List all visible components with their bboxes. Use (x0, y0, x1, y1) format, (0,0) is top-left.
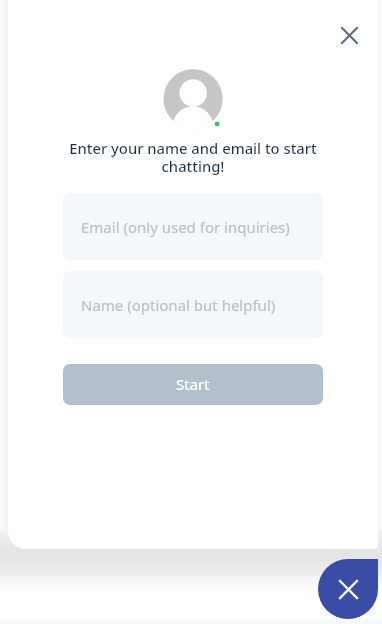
staticText: Name (optional but helpful) (81, 295, 276, 315)
button[interactable]: Close chat (318, 559, 378, 619)
staticText: Enter your name and email to start chatt… (62, 138, 324, 177)
button[interactable]: Close chat window (329, 15, 370, 56)
staticText: Start (176, 374, 210, 394)
staticText: Email (only used for inquiries) (81, 217, 290, 237)
button[interactable]: Email (only used for inquiries) (63, 193, 323, 260)
button[interactable]: Name (optional but helpful) (63, 271, 323, 338)
button[interactable]: Start (63, 364, 323, 405)
